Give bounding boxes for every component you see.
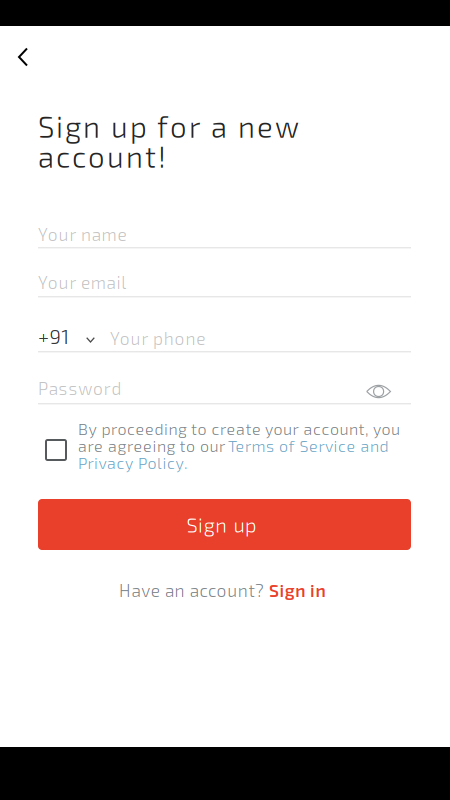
staticText: +91 xyxy=(38,324,69,348)
staticText: By proceeding to create your account, yo… xyxy=(78,419,400,438)
staticText: Have an account? xyxy=(119,580,264,600)
staticText: Sign up xyxy=(186,512,256,536)
button[interactable]: Show password xyxy=(366,384,391,399)
button[interactable]: +91 xyxy=(38,324,100,348)
button[interactable]: Back xyxy=(1,35,45,79)
button[interactable]: By proceeding to create your account, yo… xyxy=(38,419,411,473)
staticText: Password xyxy=(38,378,122,398)
staticText: account! xyxy=(38,138,166,174)
staticText: Your phone xyxy=(110,328,205,348)
staticText: Your name xyxy=(38,224,126,244)
button[interactable]: Have an account? xyxy=(119,579,333,601)
staticText: Sign in xyxy=(269,580,325,600)
staticText: Your email xyxy=(38,272,126,292)
staticText: Terms of Service and xyxy=(228,436,388,455)
button[interactable]: Sign up xyxy=(38,499,411,550)
staticText: Sign up for a new xyxy=(38,108,299,144)
staticText: Privacy Policy. xyxy=(78,453,188,472)
staticText: are agreeing to our xyxy=(78,436,225,455)
